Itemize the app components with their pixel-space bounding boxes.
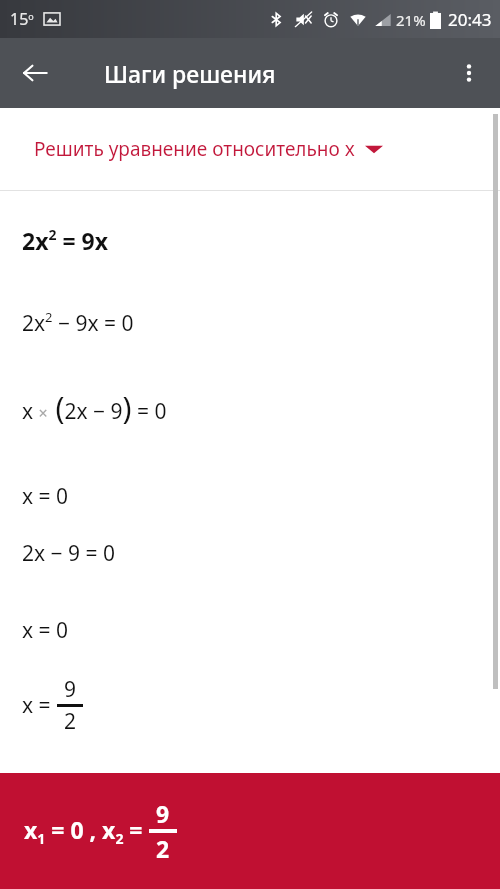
button[interactable]: 2x − 9 = 0	[0, 539, 500, 568]
staticText: Решить уравнение относительно x	[34, 136, 355, 162]
staticText: 2x2 − 9x = 0	[22, 308, 134, 337]
button[interactable]: Back	[12, 50, 58, 96]
staticText: 21%	[396, 10, 426, 30]
staticText: x × (2x − 9) = 0	[22, 387, 167, 428]
staticText: 20:43	[448, 8, 492, 31]
staticText: 2x2 = 9x	[22, 225, 109, 256]
button[interactable]: 2x2 = 9x	[0, 225, 500, 256]
staticText: 15o	[10, 8, 34, 30]
button[interactable]: More options	[446, 50, 492, 96]
staticText: x = 0	[22, 616, 69, 645]
staticText: 2	[156, 833, 170, 864]
staticText: Шаги решения	[104, 58, 276, 89]
button[interactable]: x = 0	[0, 616, 500, 645]
button[interactable]: 2x2 − 9x = 0	[0, 308, 500, 337]
button[interactable]: x1 = 0 , x2 =	[0, 773, 500, 889]
button[interactable]: Решить уравнение относительно x	[0, 108, 500, 190]
staticText: x = 0	[22, 482, 69, 511]
staticText: 9	[156, 798, 170, 829]
staticText: 9	[64, 675, 77, 704]
staticText: x =	[22, 691, 57, 720]
staticText: 2x − 9 = 0	[22, 539, 116, 568]
staticText: x1 = 0 , x2 =	[24, 814, 149, 848]
button[interactable]: x × (2x − 9) = 0	[0, 387, 500, 428]
button[interactable]: x =	[0, 675, 500, 736]
staticText: 2	[64, 707, 77, 736]
button[interactable]: x = 0	[0, 482, 500, 511]
